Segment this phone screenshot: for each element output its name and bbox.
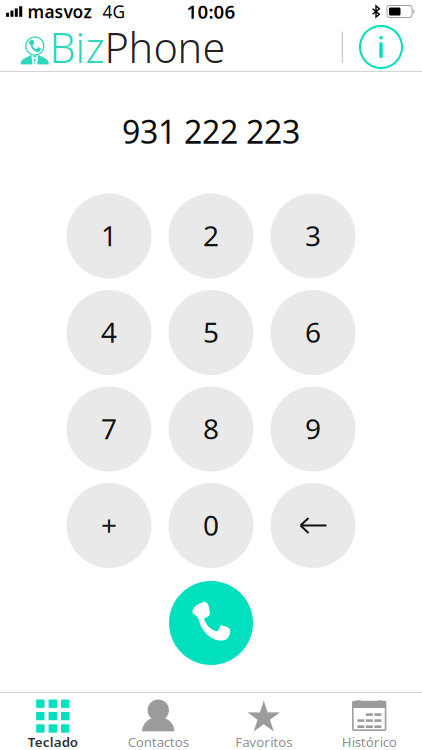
- button[interactable]: Call: [169, 581, 253, 665]
- button[interactable]: 0: [168, 483, 253, 568]
- button[interactable]: 7: [66, 386, 151, 471]
- button[interactable]: 3: [270, 193, 355, 278]
- staticText: Biz: [50, 20, 105, 74]
- staticText: Contactos: [128, 733, 189, 750]
- button[interactable]: Histórico: [316, 693, 422, 750]
- staticText: 3: [305, 217, 321, 254]
- staticText: 5: [203, 313, 219, 351]
- staticText: 9: [305, 410, 321, 447]
- staticText: 10:06: [186, 0, 235, 24]
- staticText: Histórico: [342, 733, 397, 750]
- button[interactable]: 4: [66, 290, 151, 375]
- staticText: masvoz: [27, 0, 91, 23]
- staticText: Phone: [105, 20, 226, 74]
- staticText: 4: [101, 313, 117, 351]
- staticText: +: [101, 506, 117, 544]
- button[interactable]: 1: [66, 193, 151, 278]
- button[interactable]: +: [66, 483, 151, 568]
- staticText: 931 222 223: [122, 110, 300, 152]
- button[interactable]: 8: [168, 386, 253, 471]
- button[interactable]: Teclado: [0, 693, 105, 750]
- button[interactable]: 5: [168, 290, 253, 375]
- button[interactable]: 2: [168, 193, 253, 278]
- staticText: 2: [203, 217, 219, 254]
- staticText: Teclado: [28, 733, 78, 750]
- staticText: 4G: [102, 0, 125, 23]
- button[interactable]: Delete: [270, 483, 355, 568]
- staticText: Favoritos: [235, 733, 292, 750]
- button[interactable]: 6: [270, 290, 355, 375]
- button[interactable]: Favoritos: [211, 693, 316, 750]
- staticText: 0: [203, 506, 219, 544]
- staticText: 7: [101, 410, 117, 447]
- staticText: 6: [305, 313, 321, 351]
- button[interactable]: Information: [351, 23, 411, 71]
- staticText: 8: [203, 410, 219, 447]
- staticText: 1: [101, 217, 117, 254]
- button[interactable]: 9: [270, 386, 355, 471]
- button[interactable]: Contactos: [105, 693, 211, 750]
